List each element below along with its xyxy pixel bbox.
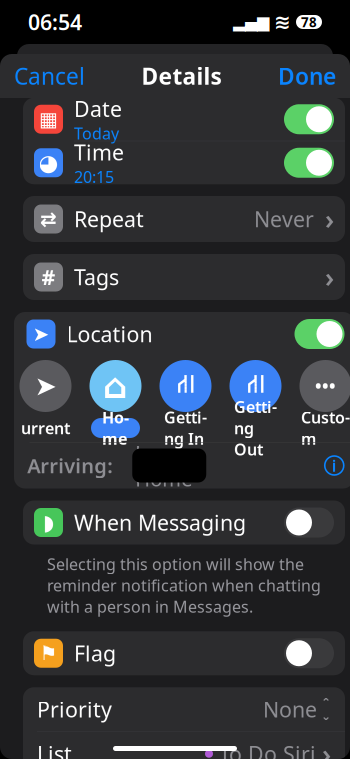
- button[interactable]: ⛙: [159, 360, 211, 438]
- staticText: Cancel: [14, 61, 85, 91]
- staticText: Tags: [74, 263, 119, 291]
- button[interactable]: ⌂: [89, 360, 141, 438]
- staticText: Done: [278, 61, 336, 91]
- staticText: #: [41, 263, 55, 291]
- staticText: When Messaging: [74, 508, 246, 537]
- staticText: Arriving:: [27, 452, 118, 479]
- staticText: List: [37, 740, 72, 759]
- staticText: ◕: [38, 150, 58, 176]
- staticText: Getting In: [164, 407, 207, 449]
- button[interactable]: •••: [299, 360, 350, 438]
- staticText: J Home: [135, 439, 205, 492]
- staticText: Today: [74, 123, 119, 144]
- staticText: ⌂: [103, 366, 128, 406]
- staticText: ➤: [34, 371, 56, 401]
- button[interactable]: ➤: [19, 360, 71, 438]
- staticText: Details: [141, 61, 221, 91]
- staticText: 20:15: [74, 166, 114, 187]
- staticText: Location: [66, 320, 152, 348]
- staticText: ▦: [39, 108, 58, 131]
- staticText: Custom: [301, 407, 350, 449]
- staticText: •••: [315, 374, 336, 397]
- staticText: To Do Siri: [213, 740, 322, 759]
- button[interactable]: #: [23, 254, 345, 300]
- button[interactable]: ⚑: [23, 631, 345, 675]
- staticText: Never: [254, 205, 314, 233]
- staticText: 06:54: [28, 8, 82, 36]
- button[interactable]: ◗: [23, 500, 345, 544]
- button[interactable]: ⇄: [23, 196, 345, 242]
- staticText: Selecting this option will show the remi…: [47, 553, 321, 617]
- staticText: ⛙: [246, 374, 264, 398]
- staticText: ⇄: [40, 208, 57, 230]
- button[interactable]: ⛙: [229, 360, 281, 438]
- staticText: ▂▄▆: [233, 13, 269, 31]
- button[interactable]: ▦: [23, 98, 345, 141]
- staticText: ›: [322, 736, 331, 759]
- staticText: None: [263, 695, 317, 723]
- button[interactable]: Cancel: [14, 61, 85, 91]
- staticText: i: [332, 455, 337, 476]
- staticText: Priority: [37, 695, 112, 723]
- button[interactable]: List: [23, 732, 345, 759]
- staticText: 78: [301, 13, 317, 31]
- button[interactable]: Arriving:: [14, 442, 350, 488]
- staticText: ⌃ ⌄: [317, 696, 331, 723]
- staticText: ≋: [274, 11, 291, 33]
- staticText: Time: [74, 138, 124, 166]
- button[interactable]: Done: [278, 61, 336, 91]
- staticText: ›: [325, 259, 334, 295]
- staticText: Repeat: [74, 205, 144, 233]
- button[interactable]: ➤: [15, 312, 350, 356]
- staticText: Home: [102, 407, 129, 449]
- staticText: ⚑: [39, 642, 57, 665]
- staticText: Date: [74, 94, 122, 123]
- staticText: Getting Out: [234, 396, 277, 460]
- staticText: urrent: [21, 417, 70, 439]
- staticText: ›: [325, 201, 334, 237]
- staticText: Flag: [74, 639, 116, 667]
- staticText: ⛙: [176, 374, 194, 398]
- button[interactable]: Priority: [23, 687, 345, 731]
- staticText: ➤: [32, 323, 49, 345]
- button[interactable]: ◕: [23, 141, 345, 184]
- staticText: ◗: [43, 510, 54, 535]
